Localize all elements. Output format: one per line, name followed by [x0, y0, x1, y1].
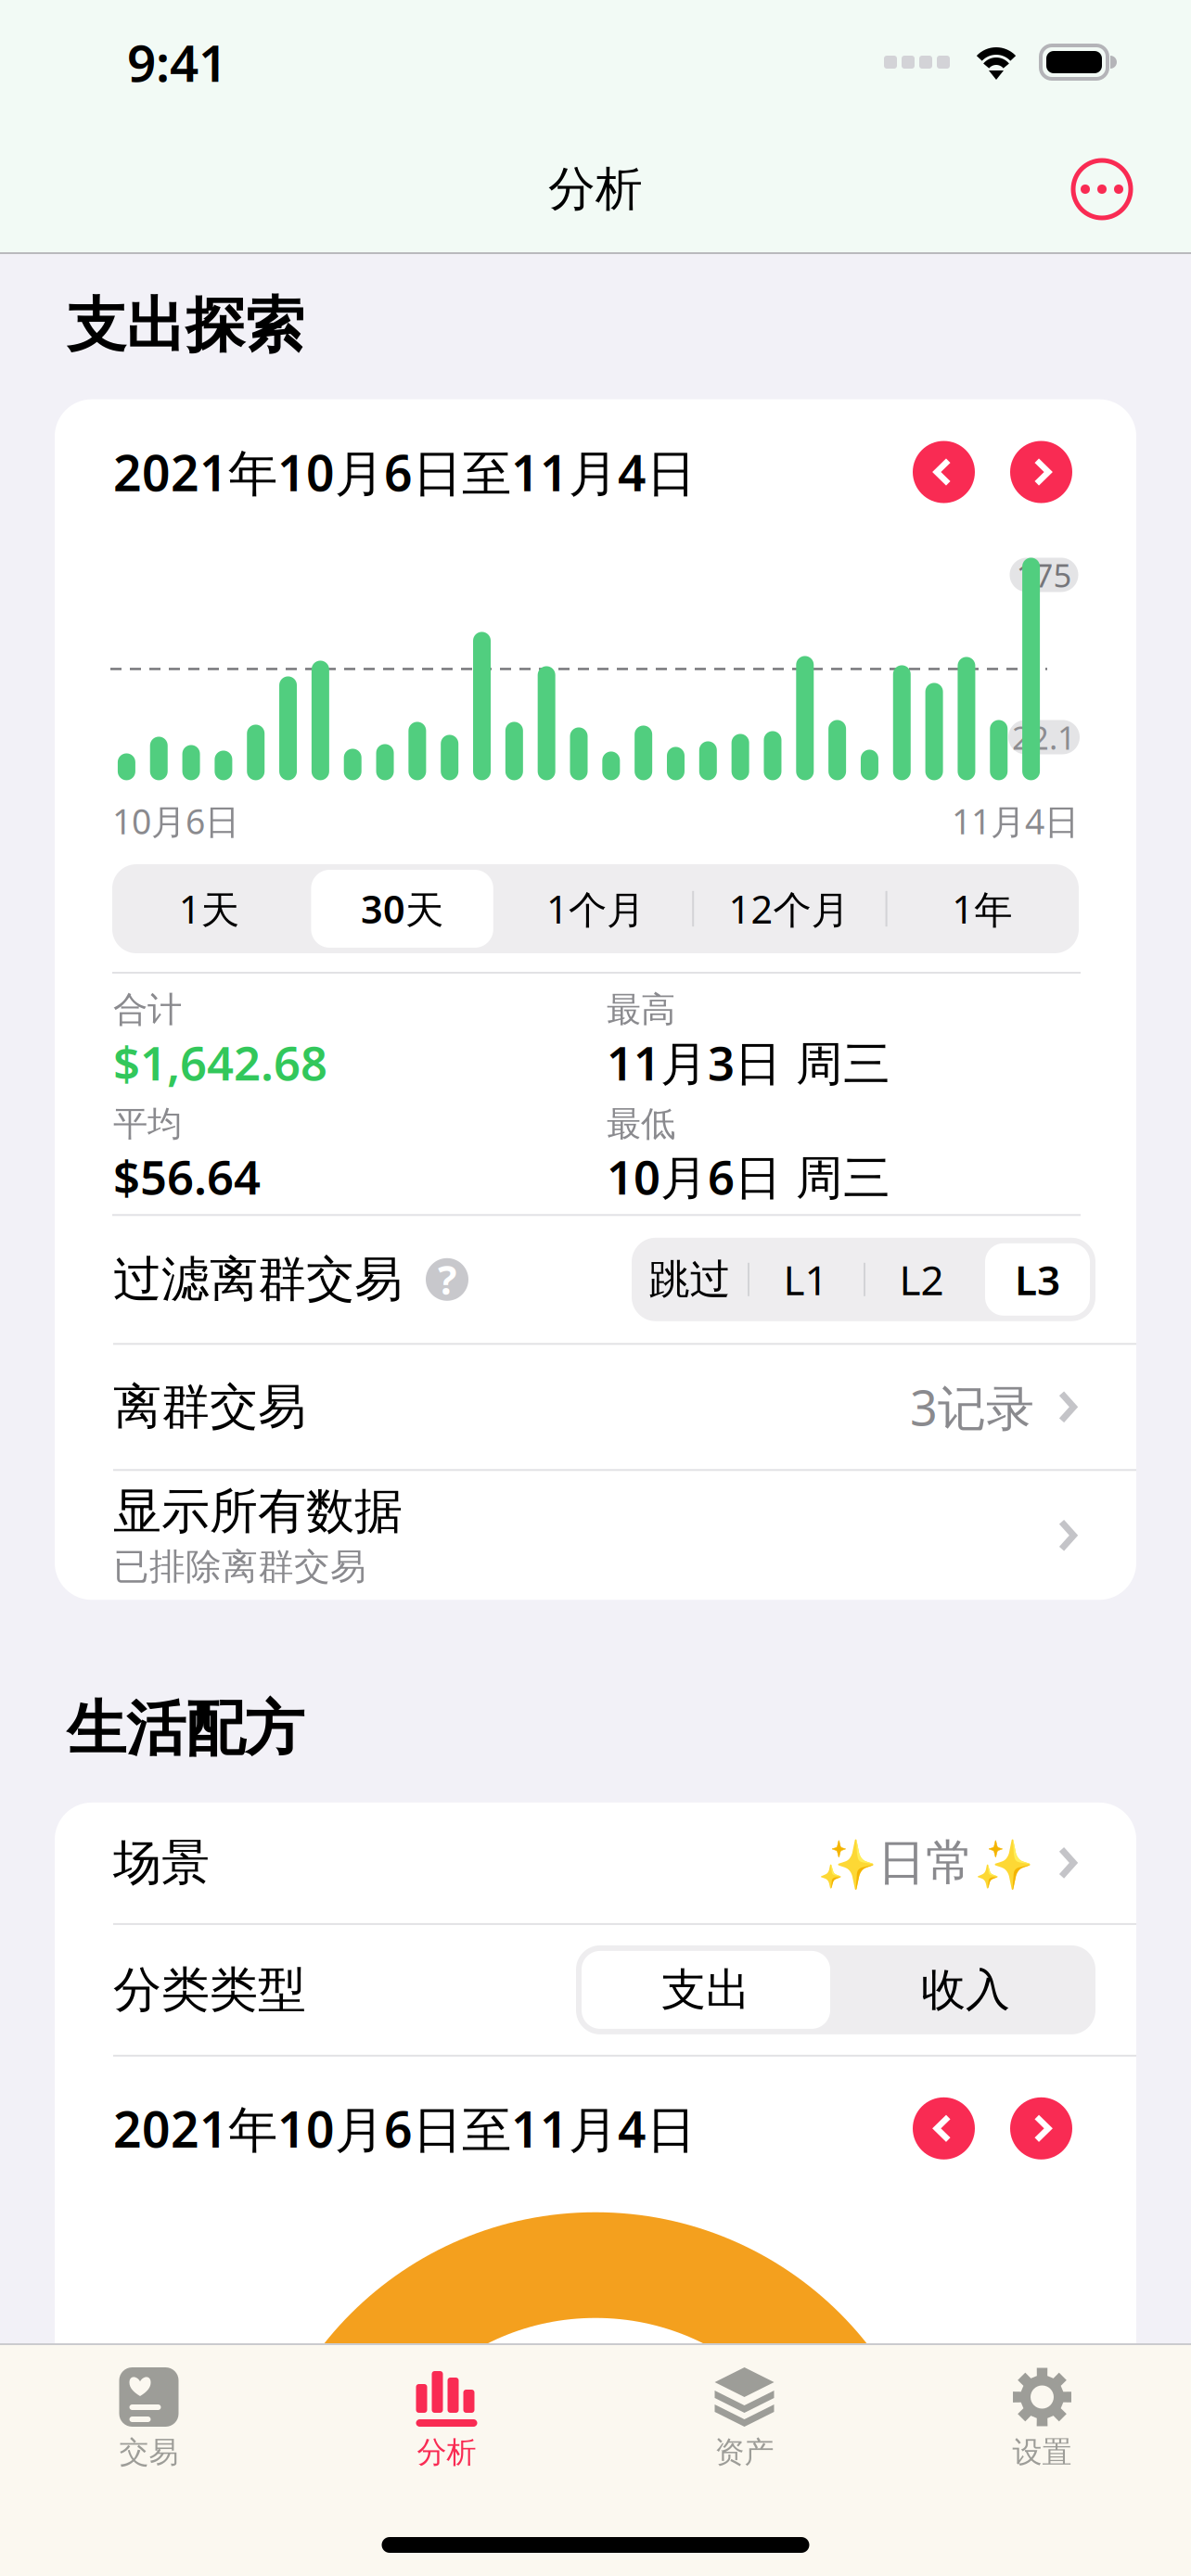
staticText: 显示所有数据: [113, 1482, 403, 1541]
staticText: L3: [1015, 1252, 1060, 1307]
staticText: 支出: [661, 1963, 750, 2017]
staticText: 平均: [113, 1103, 182, 1145]
button[interactable]: Previous period: [913, 441, 975, 503]
button[interactable]: 分析: [298, 2367, 595, 2471]
staticText: 分析: [548, 160, 643, 218]
staticText: 离群交易: [113, 1377, 306, 1437]
staticText: 支出探索: [67, 289, 304, 362]
staticText: ✨日常✨: [817, 1833, 1034, 1892]
button[interactable]: 1天: [112, 864, 306, 953]
button[interactable]: 支出: [576, 1945, 836, 2034]
button[interactable]: 离群交易: [55, 1345, 1136, 1469]
button[interactable]: 场景: [55, 1803, 1136, 1923]
staticText: $1,642.68: [113, 1031, 327, 1093]
staticText: L2: [899, 1252, 944, 1307]
button[interactable]: More options: [1067, 154, 1137, 224]
staticText: 跳过: [649, 1254, 730, 1305]
staticText: L1: [783, 1252, 828, 1307]
button[interactable]: Next period: [1010, 441, 1072, 503]
staticText: 最低: [607, 1103, 675, 1145]
button[interactable]: 显示所有数据: [55, 1471, 1136, 1600]
staticText: 22.1: [1012, 716, 1076, 758]
button[interactable]: 1个月: [499, 864, 692, 953]
button[interactable]: 30天: [306, 864, 499, 953]
staticText: 分类类型: [113, 1960, 306, 2020]
button[interactable]: 收入: [836, 1945, 1095, 2034]
button[interactable]: Next period: [1010, 2097, 1072, 2159]
staticText: 交易: [119, 2434, 179, 2471]
button[interactable]: L2: [864, 1238, 980, 1321]
button[interactable]: 资产: [595, 2367, 893, 2471]
staticText: 最高: [607, 988, 675, 1031]
button[interactable]: 12个月: [692, 864, 885, 953]
staticText: 10月6日: [112, 798, 239, 844]
staticText: 9:41: [127, 28, 227, 96]
button[interactable]: Previous period: [913, 2097, 975, 2159]
staticText: 设置: [1012, 2434, 1072, 2471]
button[interactable]: L3: [980, 1238, 1095, 1321]
staticText: 生活配方: [67, 1693, 304, 1765]
staticText: ?: [438, 1253, 456, 1306]
button[interactable]: 1年: [885, 864, 1079, 953]
staticText: 收入: [921, 1963, 1010, 2017]
staticText: 分析: [417, 2434, 476, 2471]
staticText: 175: [1016, 553, 1072, 596]
staticText: 1个月: [546, 883, 645, 934]
staticText: 3记录: [910, 1375, 1034, 1439]
staticText: 10月6日 周三: [607, 1145, 890, 1208]
button[interactable]: L1: [748, 1238, 864, 1321]
staticText: 2021年10月6日至11月4日: [113, 2096, 696, 2161]
button[interactable]: 交易: [0, 2367, 298, 2471]
staticText: 1年: [952, 883, 1012, 934]
staticText: 1天: [179, 883, 239, 934]
button[interactable]: 设置: [893, 2367, 1191, 2471]
staticText: 11月3日 周三: [607, 1031, 890, 1093]
staticText: 资产: [715, 2434, 774, 2471]
staticText: 12个月: [729, 883, 849, 934]
staticText: 2021年10月6日至11月4日: [113, 439, 696, 505]
staticText: 过滤离群交易: [113, 1250, 403, 1309]
staticText: 合计: [113, 988, 182, 1031]
staticText: 场景: [113, 1833, 210, 1892]
staticText: 已排除离群交易: [113, 1545, 366, 1589]
button[interactable]: 跳过: [632, 1238, 748, 1321]
staticText: 30天: [361, 883, 443, 934]
staticText: $56.64: [113, 1145, 261, 1208]
staticText: 11月4日: [952, 798, 1079, 844]
